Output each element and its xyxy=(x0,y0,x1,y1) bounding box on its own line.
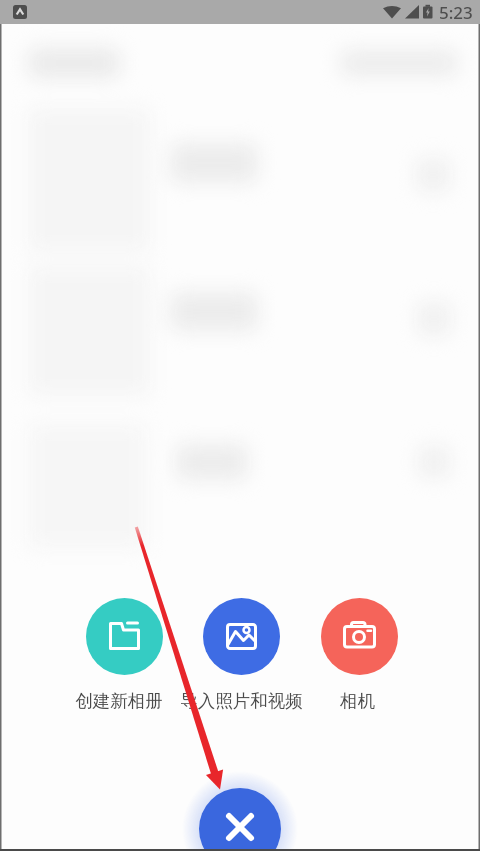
staticText: 创建新相册 xyxy=(75,690,163,712)
staticText: 相机 xyxy=(340,690,375,712)
button[interactable] xyxy=(203,598,280,675)
staticText: 导入照片和视频 xyxy=(180,690,303,712)
button[interactable] xyxy=(321,598,398,675)
button[interactable]: 相机 xyxy=(277,690,437,712)
button[interactable]: 创建新相册 xyxy=(39,690,199,712)
staticText: 5:23 xyxy=(439,1,473,24)
button[interactable] xyxy=(199,788,281,851)
button[interactable]: 导入照片和视频 xyxy=(161,690,321,712)
button[interactable] xyxy=(86,598,163,675)
